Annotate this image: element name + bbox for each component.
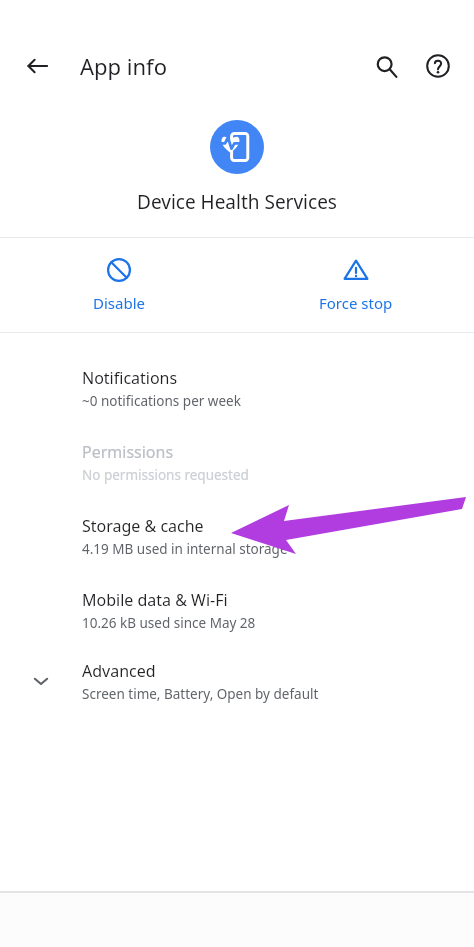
staticText: No permissions requested: [82, 466, 249, 484]
button[interactable]: Mobile data & Wi-Fi: [0, 573, 474, 647]
button[interactable]: Permissions: [0, 425, 474, 499]
button[interactable]: Advanced: [0, 647, 474, 715]
staticText: 10.26 kB used since May 28: [82, 614, 256, 632]
staticText: Mobile data & Wi-Fi: [82, 589, 228, 611]
staticText: App info: [80, 51, 167, 81]
staticText: Screen time, Battery, Open by default: [82, 685, 319, 703]
staticText: Disable: [93, 293, 145, 313]
button[interactable]: Back: [14, 42, 62, 90]
button[interactable]: Help: [416, 44, 460, 88]
button[interactable]: Notifications: [0, 351, 474, 425]
staticText: Force stop: [319, 293, 393, 313]
button[interactable]: Search: [364, 44, 408, 88]
button[interactable]: Disable: [0, 238, 237, 332]
button[interactable]: Storage & cache: [0, 499, 474, 573]
staticText: Permissions: [82, 441, 174, 463]
staticText: ~0 notifications per week: [82, 392, 241, 410]
staticText: 4.19 MB used in internal storage: [82, 540, 288, 558]
staticText: Storage & cache: [82, 515, 204, 537]
staticText: Advanced: [82, 660, 156, 682]
staticText: Device Health Services: [0, 189, 474, 215]
staticText: Notifications: [82, 367, 178, 389]
button[interactable]: Force stop: [237, 238, 474, 332]
